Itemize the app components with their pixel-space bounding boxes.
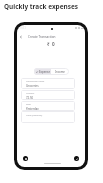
staticText: Groceries [26, 84, 39, 88]
staticText: Income [55, 70, 65, 74]
staticText: 9:41 [20, 26, 26, 30]
staticText: Quickly track expenses [4, 2, 79, 11]
staticText: Yesterday [26, 107, 39, 111]
staticText: Create Transaction [28, 35, 56, 39]
staticText: Note (optional) [26, 114, 43, 117]
button[interactable]: Income [51, 68, 69, 75]
button[interactable]: Back [18, 34, 24, 40]
button[interactable]: Date [21, 101, 75, 111]
button[interactable]: Transaction name [21, 78, 75, 89]
button[interactable]: Note (optional) [21, 111, 75, 123]
staticText: Expense [39, 70, 50, 74]
button[interactable]: Cancel [23, 156, 28, 161]
staticText: 72.50 [26, 96, 34, 100]
staticText: Transaction name [26, 80, 45, 83]
staticText: ₹ 0 [47, 41, 55, 47]
staticText: Amount [26, 92, 35, 95]
staticText: Date [26, 103, 31, 106]
button[interactable]: Amount [21, 90, 75, 100]
button[interactable]: Save [74, 156, 79, 161]
button[interactable]: Expense [34, 68, 51, 75]
